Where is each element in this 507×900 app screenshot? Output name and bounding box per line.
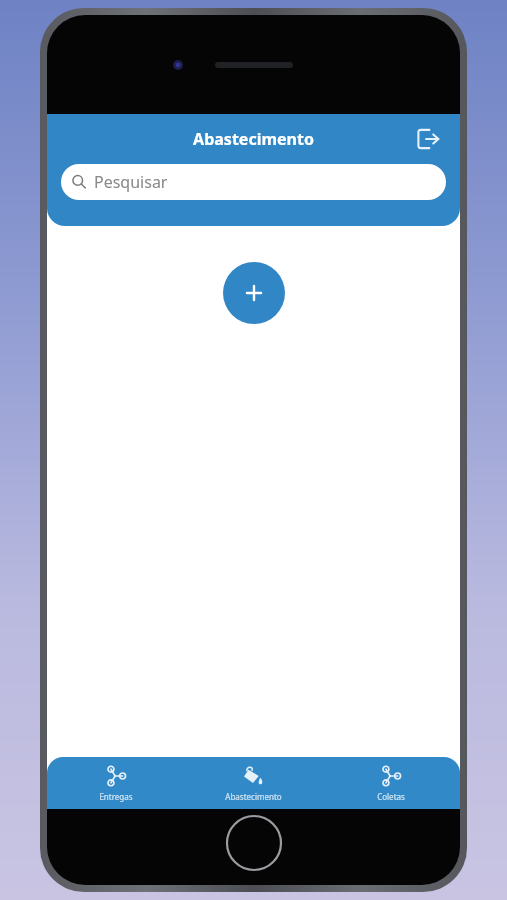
button[interactable]: Adicionar [223, 262, 285, 324]
staticText: Abastecimento [193, 128, 314, 150]
button[interactable]: Pesquisar [61, 164, 446, 200]
button[interactable]: Abastecimento [184, 757, 322, 809]
button[interactable]: Coletas [322, 757, 460, 809]
staticText: Entregas [99, 791, 133, 802]
button[interactable]: Sair [408, 119, 448, 159]
staticText: Coletas [377, 791, 405, 802]
button[interactable]: Entregas [47, 757, 184, 809]
staticText: Pesquisar [94, 171, 168, 193]
staticText: Abastecimento [225, 791, 282, 802]
